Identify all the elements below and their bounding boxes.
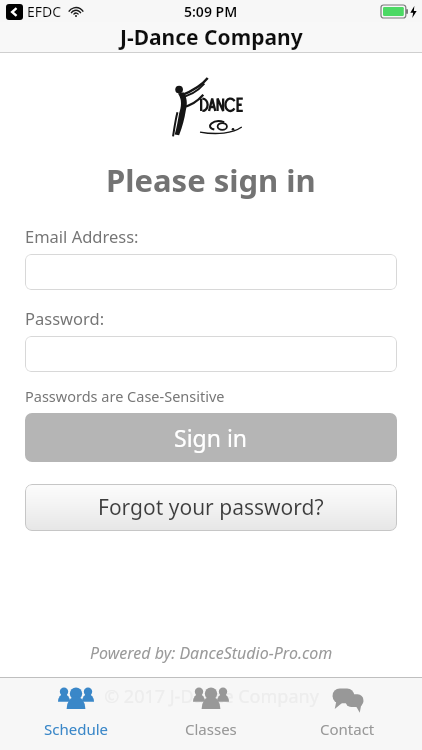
- button[interactable]: Classes: [151, 678, 271, 750]
- button[interactable]: Sign in: [25, 413, 397, 462]
- staticText: Please sign in: [106, 159, 316, 201]
- staticText: Contact: [320, 719, 375, 739]
- staticText: 5:09 PM: [184, 2, 238, 21]
- staticText: Powered by: DanceStudio-Pro.com: [90, 642, 333, 664]
- other: Contact: [327, 684, 367, 716]
- button[interactable]: Forgot your password?: [25, 484, 397, 531]
- button[interactable]: [25, 254, 397, 290]
- staticText: Password:: [25, 307, 105, 329]
- button[interactable]: Schedule: [16, 678, 136, 750]
- staticText: EFDC: [27, 2, 62, 21]
- staticText: Classes: [185, 719, 237, 739]
- other: Classes: [191, 684, 231, 716]
- staticText: Email Address:: [25, 225, 139, 247]
- staticText: J-Dance Company: [120, 23, 303, 52]
- staticText: Forgot your password?: [98, 493, 324, 522]
- button[interactable]: [25, 336, 397, 372]
- button[interactable]: Contact: [287, 678, 407, 750]
- staticText: © 2017 J-Dance Company: [104, 684, 319, 709]
- staticText: Passwords are Case-Sensitive: [25, 386, 225, 406]
- other: Schedule: [56, 684, 96, 716]
- staticText: Schedule: [44, 719, 108, 739]
- staticText: Sign in: [174, 422, 248, 453]
